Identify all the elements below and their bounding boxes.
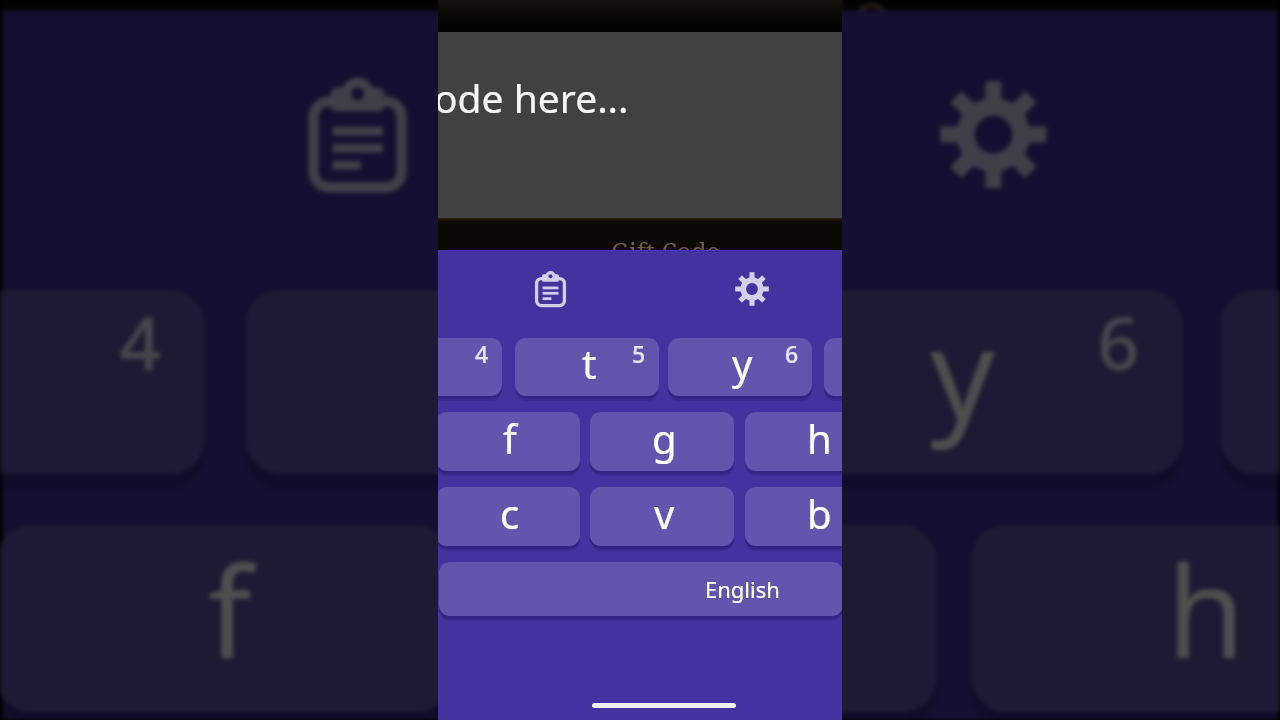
staticText: b <box>807 487 832 540</box>
staticText: ode here... <box>438 71 629 124</box>
staticText: h <box>1167 525 1246 693</box>
button[interactable]: r <box>438 338 502 396</box>
button[interactable]: h <box>745 412 842 471</box>
staticText: t <box>457 290 504 455</box>
button[interactable]: h <box>971 525 1280 712</box>
button[interactable]: b <box>745 487 842 546</box>
staticText: 5 <box>615 290 659 389</box>
button[interactable]: y <box>668 338 812 396</box>
button[interactable]: Paste from clipboard <box>261 39 451 230</box>
button[interactable]: t <box>515 338 659 396</box>
staticText: 6 <box>1097 290 1142 389</box>
button[interactable]: v <box>590 487 734 546</box>
staticText: c <box>500 487 520 540</box>
staticText: g <box>652 412 677 465</box>
staticText: English <box>705 574 780 604</box>
staticText: f <box>503 412 517 465</box>
button[interactable]: English <box>439 562 842 616</box>
button[interactable]: Paste from clipboard <box>520 259 580 319</box>
staticText: 4 <box>119 290 164 389</box>
staticText: g <box>678 525 757 693</box>
staticText: v <box>654 487 675 540</box>
button[interactable]: g <box>590 412 734 471</box>
staticText: h <box>807 412 832 465</box>
staticText: y <box>732 338 753 390</box>
button[interactable]: Keyboard settings <box>899 39 1088 230</box>
staticText: 5 <box>632 338 646 369</box>
staticText: 4 <box>475 338 489 369</box>
button[interactable]: f <box>0 525 451 712</box>
staticText: Gift Code <box>548 0 892 61</box>
button[interactable]: Keyboard settings <box>722 259 782 319</box>
button[interactable]: r <box>0 290 205 474</box>
staticText: y <box>930 290 997 455</box>
staticText: 6 <box>785 338 799 369</box>
button[interactable]: u <box>824 338 842 396</box>
button[interactable]: u <box>1220 290 1280 474</box>
button[interactable]: f <box>438 412 580 471</box>
staticText: f <box>208 525 252 693</box>
button[interactable]: y <box>728 290 1183 474</box>
button[interactable]: g <box>482 525 937 712</box>
button[interactable]: c <box>438 487 580 546</box>
staticText: t <box>582 338 597 390</box>
button[interactable]: t <box>246 290 700 474</box>
staticText: Gift Code <box>611 234 720 266</box>
